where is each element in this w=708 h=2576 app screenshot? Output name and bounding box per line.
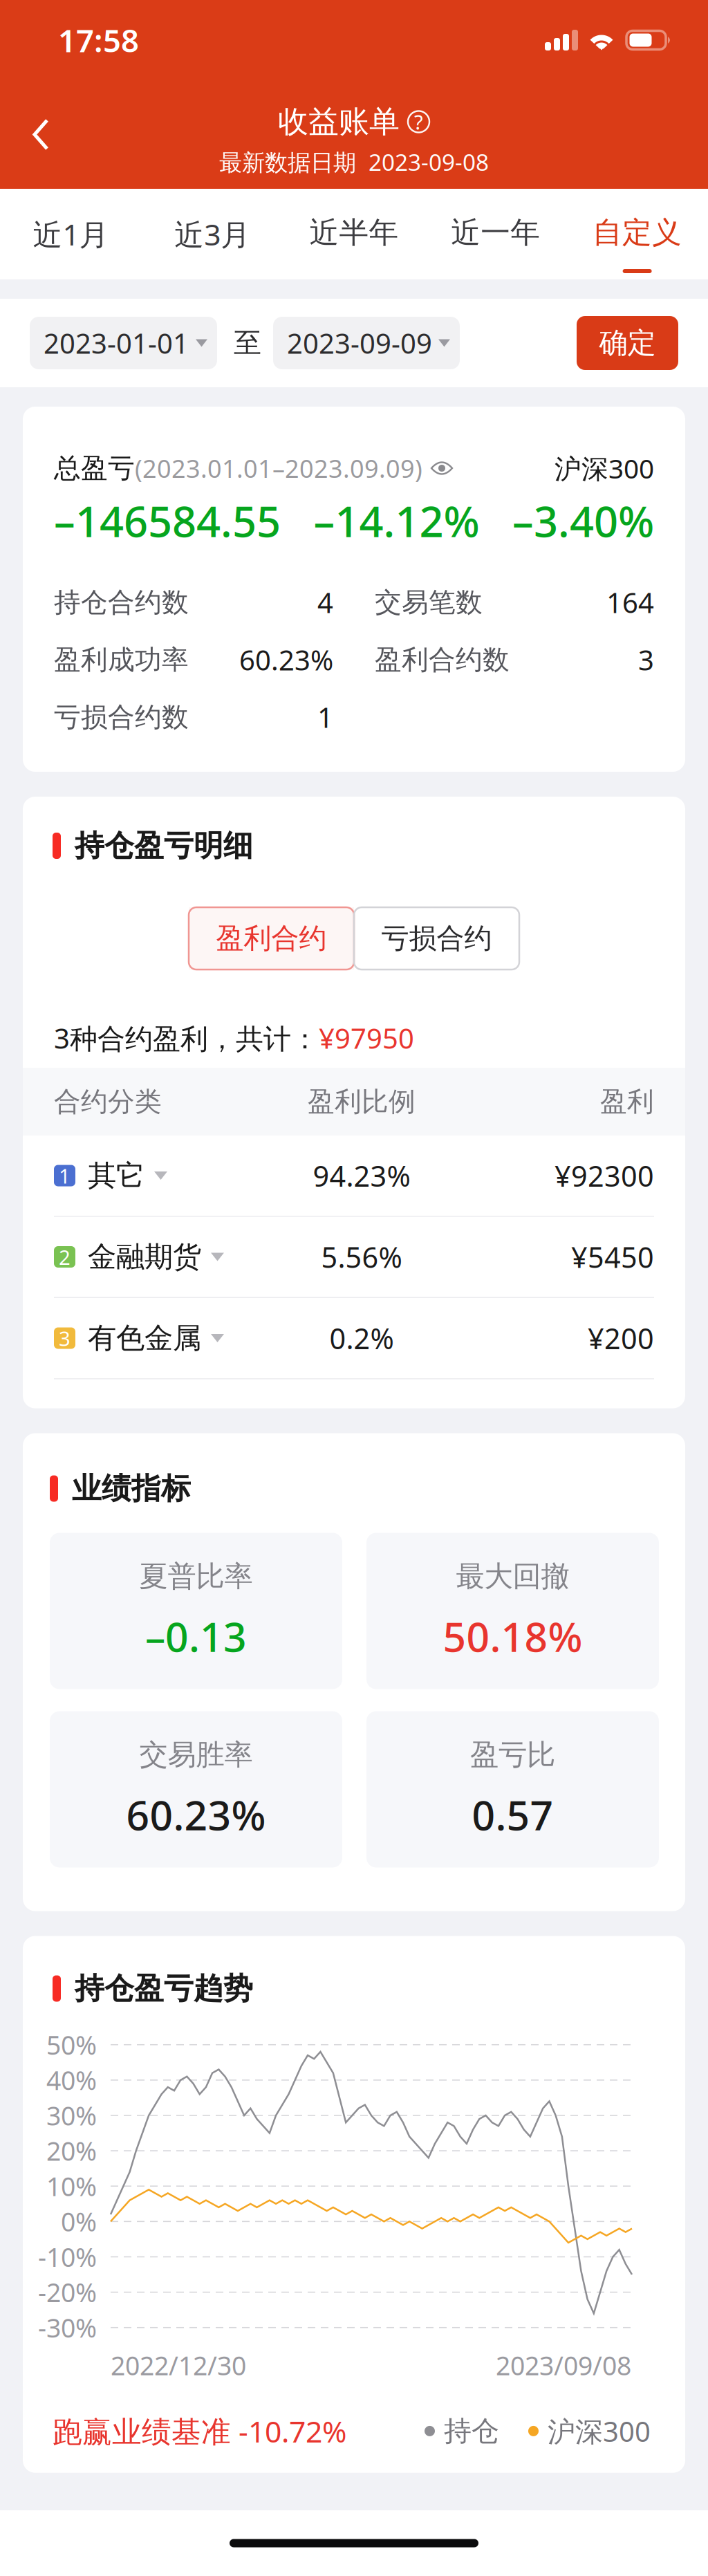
button[interactable]: 近3月 xyxy=(142,189,283,279)
staticText: 1 xyxy=(317,699,333,735)
staticText: 合约分类 xyxy=(54,1085,162,1118)
staticText: 持仓盈亏趋势 xyxy=(75,1970,253,2007)
staticText: 50.18% xyxy=(443,1609,583,1663)
staticText: (2023.01.01–2023.09.09) xyxy=(135,452,422,485)
button[interactable]: 近半年 xyxy=(283,189,425,279)
button[interactable]: 亏损合约 xyxy=(354,907,519,970)
staticText: 3种合约盈利，共计： xyxy=(54,1020,319,1056)
staticText: ¥92300 xyxy=(555,1157,654,1195)
staticText: 17:58 xyxy=(58,19,139,61)
button[interactable]: 近一年 xyxy=(425,189,566,279)
staticText: 跑赢业绩基准 -10.72% xyxy=(53,2411,346,2451)
staticText: 2023/09/08 xyxy=(496,2348,631,2382)
button[interactable]: 自定义 xyxy=(566,189,708,279)
staticText: 2023-01-01 xyxy=(44,325,189,361)
staticText: 最新数据日期 2023-09-08 xyxy=(219,147,489,177)
staticText: –3.40% xyxy=(512,493,654,549)
staticText: 金融期货 xyxy=(88,1239,201,1274)
staticText: 20% xyxy=(46,2134,97,2168)
staticText: 近1月 xyxy=(33,214,109,254)
staticText: 4 xyxy=(317,584,333,621)
staticText: 10% xyxy=(46,2169,97,2203)
staticText: 盈利比例 xyxy=(308,1085,416,1118)
staticText: 沪深300 xyxy=(555,450,654,486)
staticText: 总盈亏 xyxy=(54,452,135,485)
staticText: 2 xyxy=(59,1243,71,1270)
button[interactable]: 近1月 xyxy=(0,189,142,279)
staticText: –0.13 xyxy=(145,1609,247,1663)
staticText: 持仓盈亏明细 xyxy=(75,828,253,864)
staticText: 亏损合约数 xyxy=(54,701,189,734)
button[interactable]: 确定 xyxy=(577,316,678,370)
staticText: -10% xyxy=(38,2240,97,2274)
staticText: 盈亏比 xyxy=(470,1737,555,1772)
staticText: 至 xyxy=(234,326,261,360)
staticText: -30% xyxy=(38,2310,97,2345)
staticText: 亏损合约 xyxy=(381,921,492,955)
staticText: –146584.55 xyxy=(54,493,281,549)
staticText: 盈利成功率 xyxy=(54,643,189,676)
staticText: 60.23% xyxy=(126,1788,266,1841)
staticText: 持仓合约数 xyxy=(54,586,189,619)
staticText: 盈利合约 xyxy=(216,921,327,955)
staticText: 夏普比率 xyxy=(139,1559,253,1594)
staticText: 1 xyxy=(59,1162,71,1189)
staticText: 盈利 xyxy=(600,1085,654,1118)
staticText: 沪深300 xyxy=(548,2413,651,2449)
button[interactable]: 2023-09-09 xyxy=(273,317,460,369)
staticText: 0% xyxy=(61,2204,97,2239)
button[interactable]: 返回 xyxy=(14,109,68,160)
staticText: 30% xyxy=(46,2098,97,2133)
staticText: 50% xyxy=(46,2028,97,2062)
staticText: ¥200 xyxy=(588,1319,654,1357)
button[interactable]: 帮助 xyxy=(407,110,430,133)
staticText: 近一年 xyxy=(451,214,540,251)
staticText: 0.57 xyxy=(472,1788,553,1841)
staticText: 确定 xyxy=(599,325,656,361)
staticText: 交易胜率 xyxy=(139,1737,253,1772)
staticText: 94.23% xyxy=(313,1157,410,1195)
staticText: -20% xyxy=(38,2275,97,2309)
staticText: 0.2% xyxy=(329,1319,394,1357)
staticText: 盈利合约数 xyxy=(375,643,510,676)
staticText: –14.12% xyxy=(314,493,479,549)
staticText: 近3月 xyxy=(174,214,250,254)
staticText: 近半年 xyxy=(309,214,399,251)
staticText: ? xyxy=(414,108,423,135)
staticText: 164 xyxy=(606,584,654,621)
staticText: 有色金属 xyxy=(88,1321,201,1356)
staticText: ¥97950 xyxy=(319,1020,414,1056)
staticText: 3 xyxy=(638,641,654,678)
staticText: 其它 xyxy=(88,1158,145,1193)
staticText: 持仓 xyxy=(444,2414,499,2448)
button[interactable]: 显示或隐藏金额 xyxy=(422,456,453,480)
staticText: 收益账单 xyxy=(278,103,400,140)
staticText: 3 xyxy=(59,1325,71,1352)
staticText: 业绩指标 xyxy=(72,1470,191,1507)
staticText: 40% xyxy=(46,2063,97,2097)
staticText: 2023-09-09 xyxy=(287,325,432,361)
staticText: ¥5450 xyxy=(571,1238,654,1276)
staticText: 交易笔数 xyxy=(375,586,483,619)
staticText: 2022/12/30 xyxy=(111,2348,246,2382)
staticText: 5.56% xyxy=(321,1238,402,1276)
staticText: 自定义 xyxy=(593,214,682,251)
staticText: 60.23% xyxy=(239,641,333,678)
button[interactable]: 2023-01-01 xyxy=(30,317,217,369)
staticText: 最大回撤 xyxy=(456,1559,569,1594)
button[interactable]: 盈利合约 xyxy=(189,907,354,970)
